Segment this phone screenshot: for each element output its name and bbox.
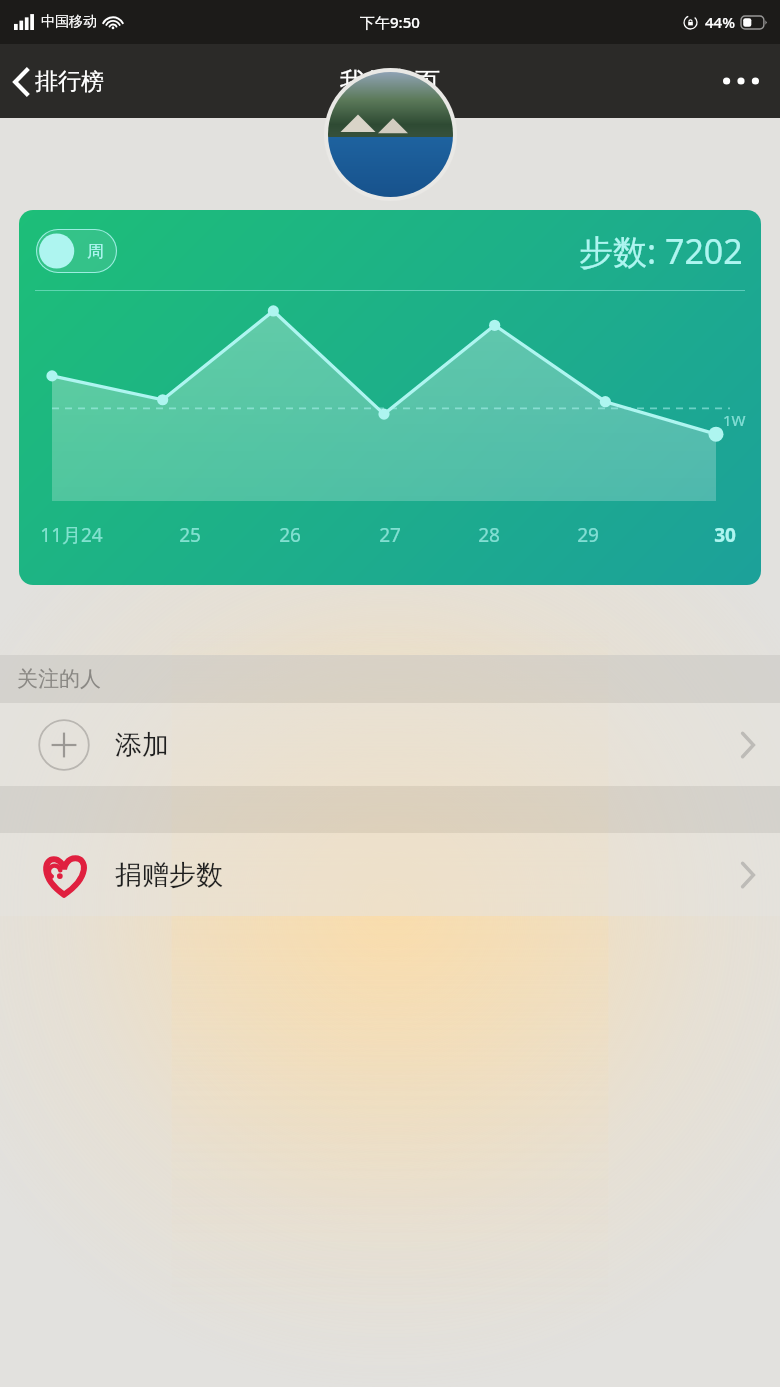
staticText: 捐赠步数 (115, 858, 223, 892)
staticText: 29 (577, 522, 599, 548)
staticText: 27 (379, 522, 401, 548)
staticText: 步数: 7202 (579, 228, 743, 274)
button[interactable]: 添加 (0, 703, 780, 786)
staticText: 我的主页 (340, 66, 440, 97)
staticText: 25 (179, 522, 201, 548)
staticText: 26 (279, 522, 301, 548)
button[interactable]: 周 (19, 210, 761, 585)
button[interactable]: 捐赠步数 (0, 833, 780, 916)
button[interactable]: Profile photo (324, 68, 457, 201)
button[interactable]: 周 (36, 229, 117, 273)
staticText: 下午9:50 (360, 12, 420, 32)
staticText: 1W (723, 410, 746, 430)
staticText: 关注的人 (17, 666, 101, 692)
staticText: 11月24 (40, 522, 103, 548)
staticText: 30 (714, 522, 736, 548)
staticText: 周 (87, 241, 104, 262)
staticText: 44% (705, 12, 735, 32)
button[interactable]: 排行榜 (0, 57, 120, 106)
staticText: 排行榜 (35, 67, 104, 96)
staticText: 添加 (115, 728, 169, 762)
button[interactable]: More options (702, 57, 780, 105)
staticText: 28 (478, 522, 500, 548)
staticText: 中国移动 (41, 13, 97, 31)
